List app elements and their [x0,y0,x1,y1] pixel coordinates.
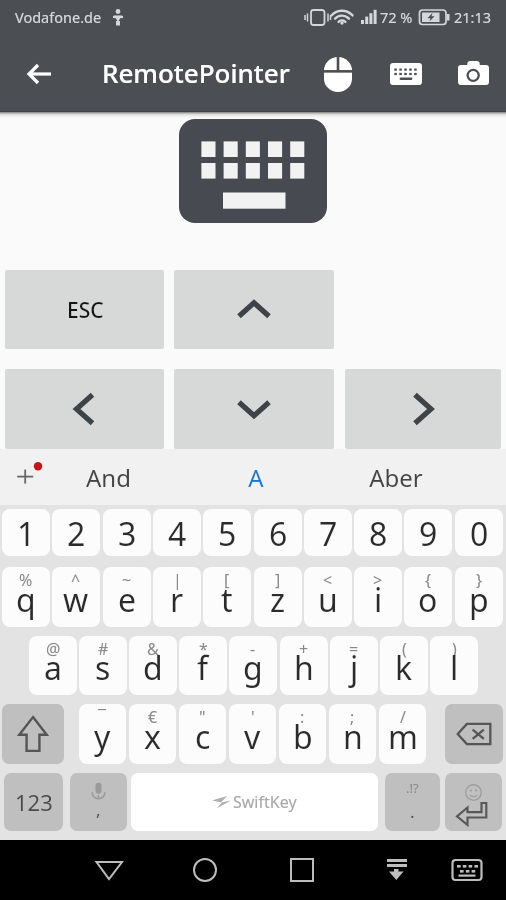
staticText: { [425,569,432,591]
staticText: - [250,638,256,660]
button[interactable]: ‾ [79,704,126,764]
staticText: [ [224,569,230,591]
staticText: + [299,638,309,660]
staticText: 0 [470,512,489,556]
staticText: SwiftKey [233,791,297,813]
button[interactable]: @ [29,636,77,695]
button[interactable]: ~ [103,567,151,627]
button[interactable]: > [354,567,402,627]
button[interactable]: ; [329,704,376,764]
staticText: m [388,715,418,759]
button[interactable]: Camera [449,50,497,98]
button[interactable]: - [229,636,277,695]
staticText: 3 [118,512,137,556]
staticText: w [63,578,89,622]
button[interactable]: ( [380,636,428,695]
staticText: c [195,715,211,759]
button[interactable]: { [404,567,452,627]
staticText: # [98,638,109,660]
button[interactable]: 9 [404,509,452,556]
button[interactable]: Voice input [70,773,127,831]
staticText: Vodafone.de [15,7,102,27]
button[interactable]: Add [0,449,58,505]
button[interactable]: Keyboard [179,119,327,223]
staticText: s [95,646,111,690]
staticText: , [96,798,101,821]
button[interactable]: Right [345,369,501,449]
button[interactable]: Down [174,369,334,449]
button[interactable]: * [179,636,227,695]
staticText: 4 [168,512,187,556]
button[interactable]: 3 [103,509,151,556]
staticText: .!? [406,779,419,797]
staticText: 5 [218,512,237,556]
staticText: z [270,578,286,622]
button[interactable]: / [379,704,426,764]
button[interactable]: Left [5,369,164,449]
staticText: ESC [67,296,104,325]
staticText: a [44,646,62,690]
button[interactable]: Space [131,773,378,831]
staticText: r [170,578,184,622]
button[interactable]: + [280,636,328,695]
button[interactable]: 6 [254,509,302,556]
button[interactable]: : [279,704,326,764]
button[interactable]: & [129,636,177,695]
button[interactable]: Up [174,270,334,349]
button[interactable]: Backspace [445,704,503,764]
button[interactable]: Enter [445,773,502,831]
staticText: . [410,800,415,823]
staticText: ‾ [98,706,107,728]
button[interactable]: " [179,704,226,764]
button[interactable]: ] [254,567,302,627]
button[interactable]: And [53,449,163,505]
staticText: v [244,715,261,759]
staticText: } [476,569,483,591]
button[interactable]: Keyboard [382,50,430,98]
button[interactable]: Shift [2,704,64,764]
staticText: ~ [122,569,132,591]
staticText: / [400,706,406,728]
button[interactable]: .!? [385,773,440,831]
staticText: j [350,646,359,690]
button[interactable]: # [79,636,127,695]
button[interactable]: < [304,567,352,627]
button[interactable]: [ [203,567,251,627]
staticText: ; [350,706,355,728]
staticText: * [199,638,208,660]
button[interactable]: = [330,636,378,695]
button[interactable]: ) [430,636,478,695]
button[interactable]: } [455,567,503,627]
staticText: i [374,578,383,622]
staticText: x [144,715,161,759]
staticText: > [373,569,383,591]
button[interactable]: ^ [52,567,100,627]
button[interactable]: 8 [354,509,402,556]
staticText: € [148,706,158,728]
button[interactable]: ESC [5,270,164,349]
button[interactable]: % [2,567,50,627]
button[interactable]: A [201,449,311,505]
staticText: y [94,715,111,759]
button[interactable]: € [129,704,176,764]
staticText: 8 [369,512,388,556]
staticText: ' [251,706,255,728]
staticText: | [173,569,182,591]
button[interactable]: 7 [304,509,352,556]
button[interactable]: Back [18,52,62,96]
button[interactable]: 1 [2,509,50,556]
staticText: = [349,638,359,660]
button[interactable]: Mouse [314,50,362,98]
button[interactable]: 5 [203,509,251,556]
staticText: b [293,715,313,759]
staticText: l [450,646,459,690]
button[interactable]: 0 [455,509,503,556]
button[interactable]: | [153,567,201,627]
button[interactable]: 123 [4,773,63,831]
button[interactable]: 4 [153,509,201,556]
button[interactable]: 2 [52,509,100,556]
staticText: u [318,578,338,622]
staticText: o [418,578,438,622]
button[interactable]: Aber [341,449,451,505]
button[interactable]: ' [229,704,276,764]
